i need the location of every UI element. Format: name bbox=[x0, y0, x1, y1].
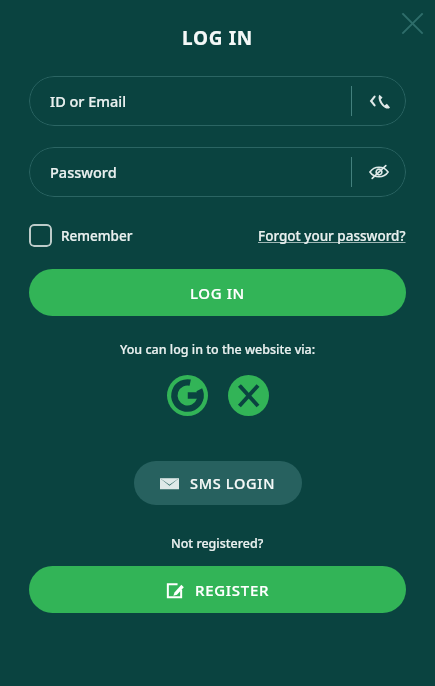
staticText: SMS LOGIN bbox=[190, 473, 276, 493]
button[interactable]: ID or Email bbox=[29, 76, 406, 126]
staticText: Not registered? bbox=[171, 535, 264, 552]
staticText: Forgot your password? bbox=[258, 227, 406, 245]
staticText: You can log in to the website via: bbox=[120, 341, 316, 358]
staticText: Password bbox=[50, 162, 117, 182]
staticText: LOG IN bbox=[182, 25, 254, 51]
button[interactable]: LOG IN bbox=[29, 269, 406, 316]
button[interactable]: Forgot your password? bbox=[258, 227, 406, 245]
button[interactable]: REGISTER bbox=[29, 566, 406, 613]
staticText: REGISTER bbox=[195, 580, 270, 600]
button[interactable]: SMS LOGIN bbox=[134, 461, 302, 505]
button[interactable]: Remember bbox=[29, 224, 133, 247]
button[interactable]: Password bbox=[29, 147, 406, 197]
button[interactable]: Sign in with Google bbox=[167, 375, 208, 416]
staticText: LOG IN bbox=[190, 283, 245, 303]
button[interactable]: Sign in with X bbox=[228, 375, 269, 416]
button[interactable]: Close bbox=[392, 3, 432, 43]
staticText: ID or Email bbox=[50, 91, 127, 111]
staticText: Remember bbox=[61, 227, 133, 245]
